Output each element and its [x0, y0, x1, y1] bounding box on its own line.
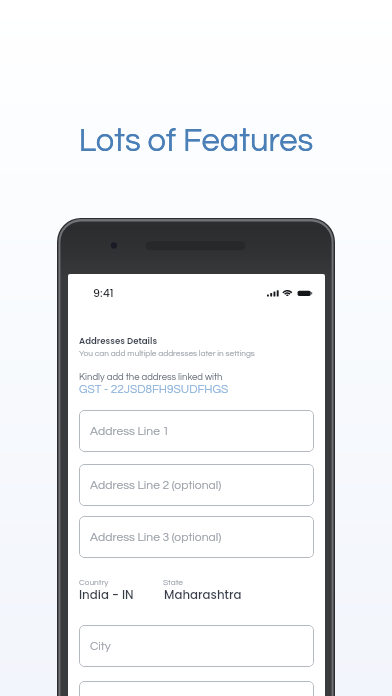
button[interactable]: Address Line 1: [79, 410, 314, 452]
button[interactable]: Address Line 3 (optional): [79, 516, 314, 558]
staticText: GST - 22JSD8FH9SUDFHGS: [79, 383, 229, 395]
button[interactable]: Address Line 2 (optional): [79, 464, 314, 506]
staticText: State: [163, 578, 183, 587]
other: Signal, wifi and battery status: [267, 290, 313, 298]
staticText: You can add multiple addresses later in …: [79, 349, 255, 358]
button[interactable]: City: [79, 625, 314, 667]
staticText: City: [90, 640, 111, 652]
staticText: Country: [79, 578, 109, 587]
staticText: Address Line 1: [90, 425, 170, 437]
staticText: Address Line 2 (optional): [90, 479, 222, 491]
staticText: Address Line 3 (optional): [90, 531, 222, 543]
staticText: Addresses Details: [79, 335, 158, 347]
staticText: Lots of Features: [0, 124, 392, 158]
staticText: Lots of Features: [0, 124, 392, 158]
staticText: Kindly add the address linked with: [79, 372, 223, 382]
button[interactable]: Pincode: [79, 681, 314, 696]
staticText: India - IN: [79, 587, 134, 604]
staticText: Maharashtra: [164, 587, 242, 604]
staticText: 9:41: [93, 285, 114, 300]
